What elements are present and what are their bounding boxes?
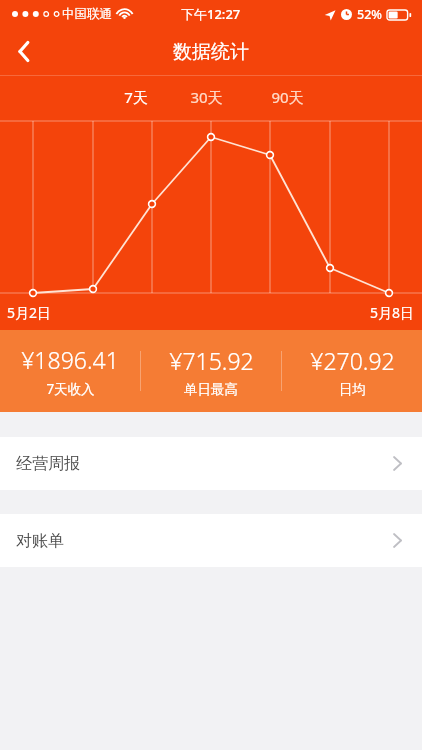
staticText: 中国联通 bbox=[62, 6, 112, 22]
staticText: 单日最高 bbox=[184, 381, 238, 398]
staticText: 日均 bbox=[339, 381, 366, 398]
staticText: 90天 bbox=[271, 87, 304, 107]
staticText: 30天 bbox=[190, 87, 223, 107]
button[interactable]: 30天 bbox=[173, 76, 239, 117]
staticText: ¥715.92 bbox=[169, 345, 254, 376]
button[interactable]: 对账单 bbox=[0, 514, 422, 567]
staticText: 数据统计 bbox=[173, 40, 249, 64]
button[interactable]: 经营周报 bbox=[0, 437, 422, 490]
button[interactable]: 7天 bbox=[103, 76, 169, 117]
button[interactable]: Back bbox=[0, 28, 48, 75]
staticText: 对账单 bbox=[16, 531, 64, 551]
staticText: 下午12:27 bbox=[181, 5, 241, 23]
staticText: 5月8日 bbox=[370, 303, 415, 322]
staticText: 7天 bbox=[124, 87, 148, 107]
staticText: 5月2日 bbox=[7, 303, 52, 322]
button[interactable]: 90天 bbox=[254, 76, 320, 117]
staticText: ¥1896.41 bbox=[21, 344, 119, 375]
staticText: 经营周报 bbox=[16, 454, 80, 474]
staticText: 7天收入 bbox=[46, 380, 95, 398]
staticText: 52% bbox=[357, 6, 382, 23]
staticText: ¥270.92 bbox=[310, 345, 395, 376]
